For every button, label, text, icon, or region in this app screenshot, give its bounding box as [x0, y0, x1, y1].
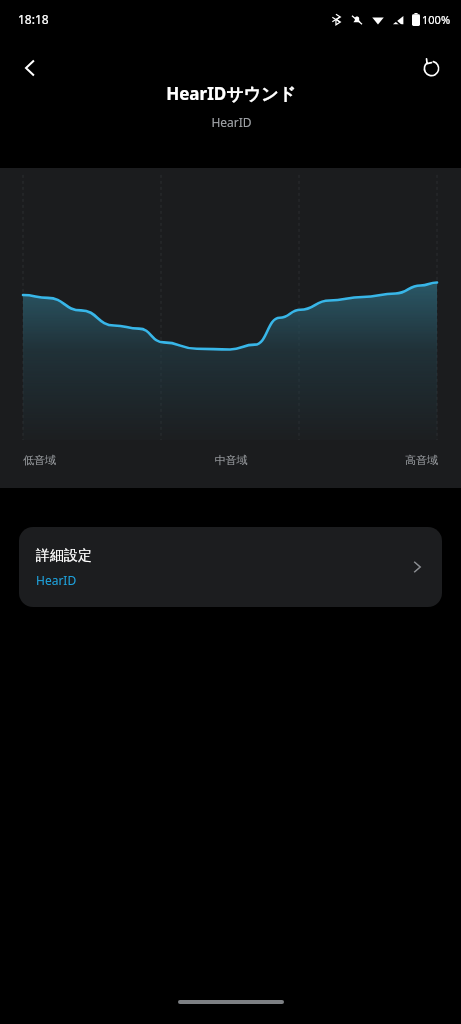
staticText: 詳細設定 [36, 547, 92, 565]
staticText: HearID [211, 114, 252, 130]
staticText: 100% [422, 12, 451, 27]
staticText: HearID [36, 572, 77, 588]
staticText: 18:18 [18, 11, 49, 27]
button[interactable]: Back [6, 44, 54, 92]
staticText: HearIDサウンド [166, 82, 296, 105]
staticText: 低音域 [23, 453, 162, 467]
button[interactable]: 詳細設定 [19, 527, 442, 607]
button[interactable]: Reset [407, 44, 455, 92]
staticText: 高音域 [300, 453, 438, 467]
staticText: 中音域 [162, 453, 300, 467]
